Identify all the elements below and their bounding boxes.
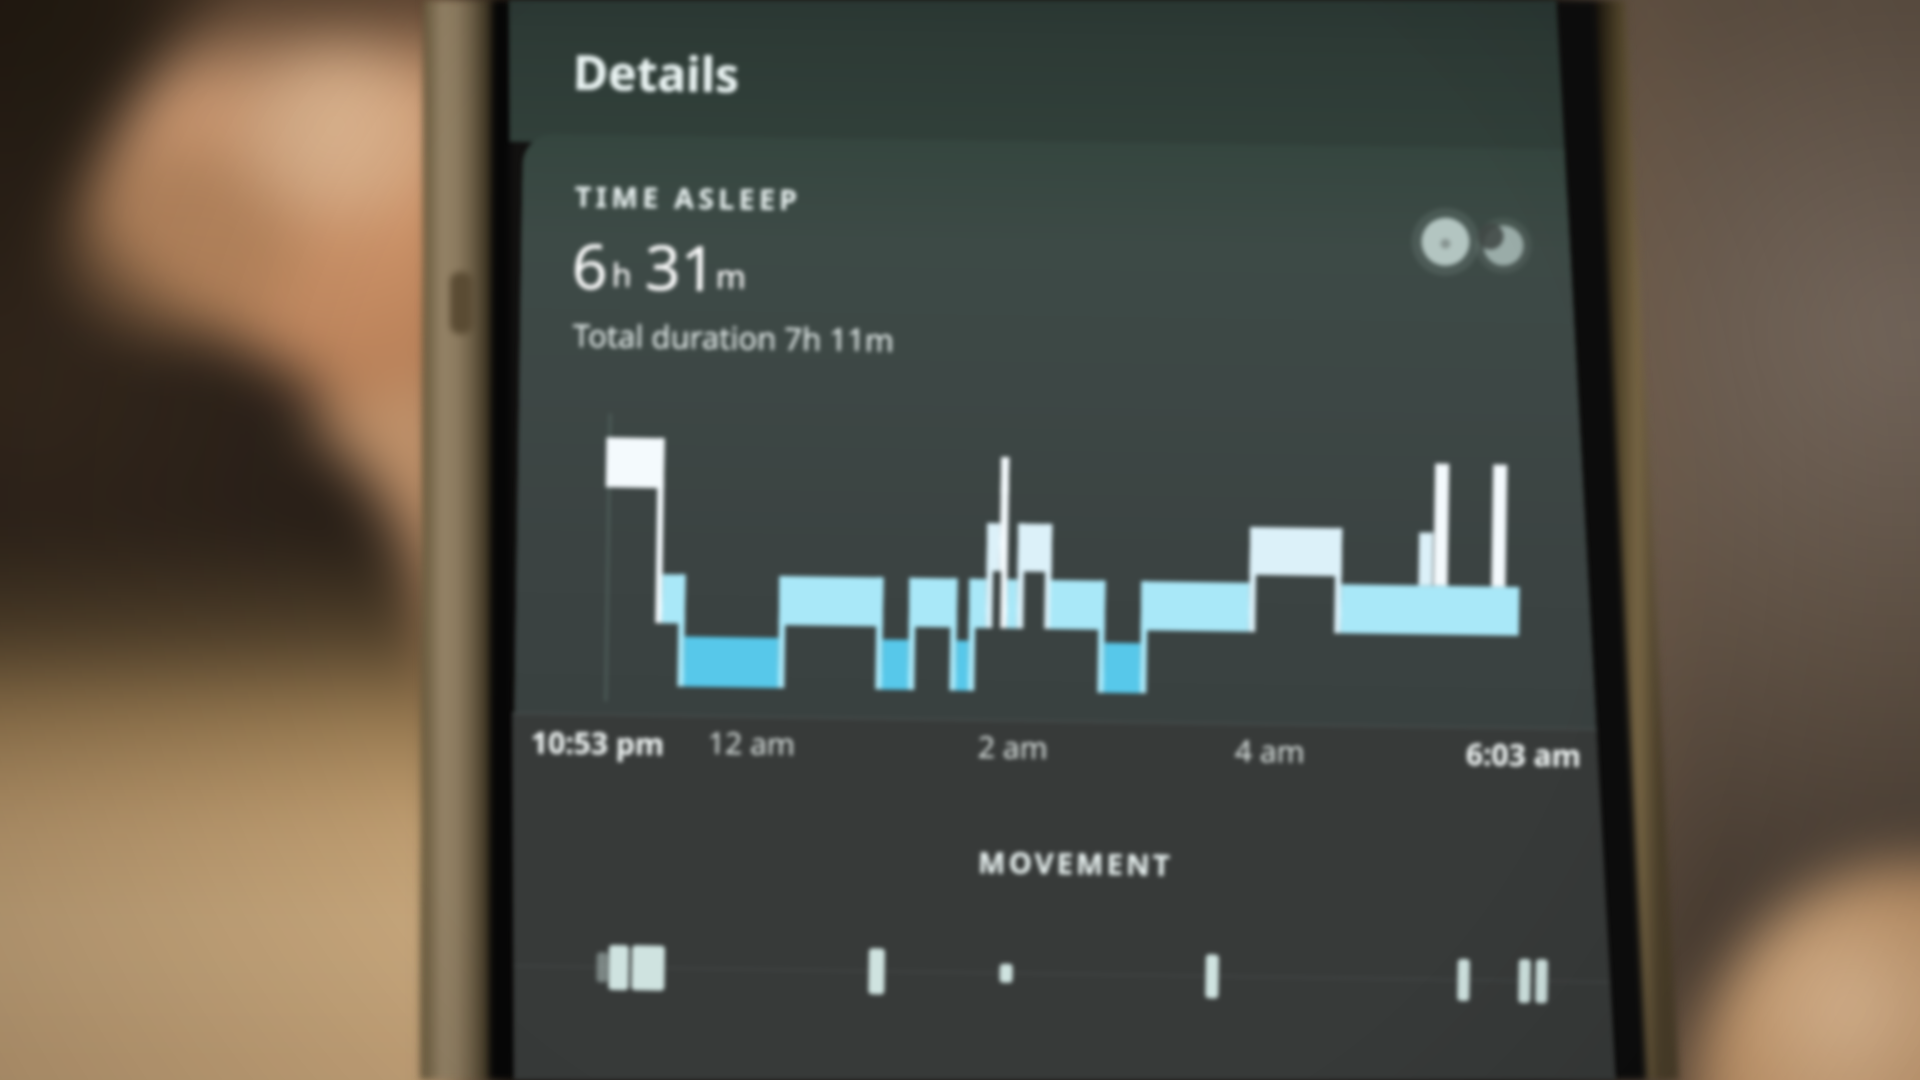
- button[interactable]: Sleep insights: [1412, 200, 1468, 256]
- button[interactable]: Movement during sleep: [518, 790, 1578, 1040]
- button[interactable]: Sleep stages chart, 10:53 pm to 6:03 am: [518, 400, 1578, 714]
- button[interactable]: Details: [0, 0, 1920, 1080]
- button[interactable]: Details: [566, 30, 766, 102]
- button[interactable]: Time asleep 6 hours 31 minutes, total du…: [518, 134, 1578, 294]
- button[interactable]: Sleep mode: [1472, 204, 1528, 260]
